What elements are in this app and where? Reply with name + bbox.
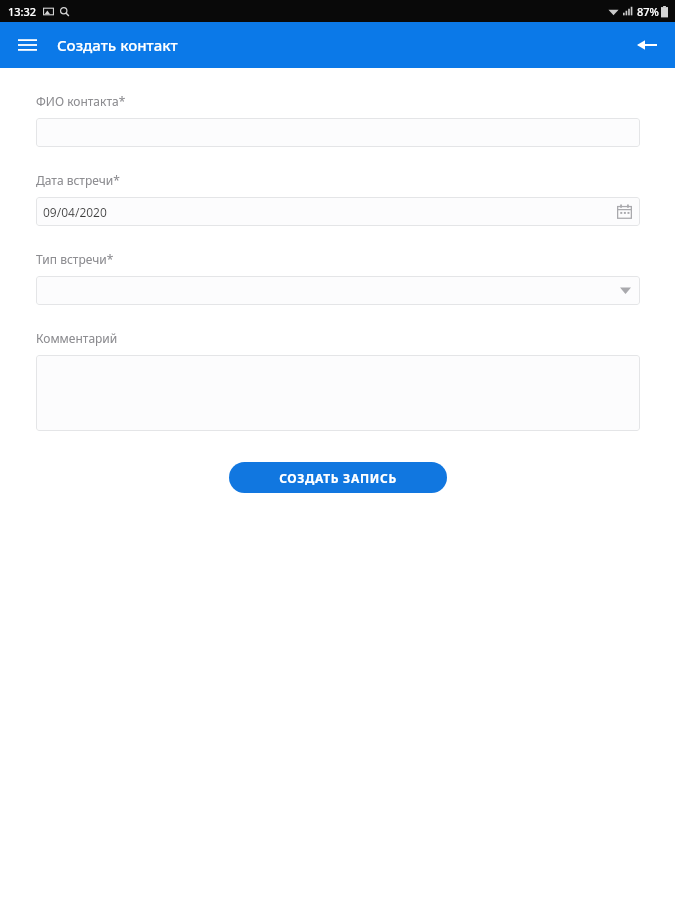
button[interactable]: Meeting type dropdown [36,276,640,305]
button[interactable]: 09/04/2020 [36,197,640,226]
staticText: 09/04/2020 [43,204,107,220]
staticText: ФИО контакта* [36,93,126,109]
button[interactable]: СОЗДАТЬ ЗАПИСЬ [229,462,447,493]
button[interactable]: Open navigation menu [7,25,47,65]
staticText: Дата встречи* [36,172,120,188]
staticText: СОЗДАТЬ ЗАПИСЬ [279,470,397,486]
staticText: Тип встречи* [36,251,114,267]
button[interactable]: Comment input [36,355,640,431]
button[interactable]: Contact full name input [36,118,640,147]
staticText: 87% [637,4,659,19]
staticText: Создать контакт [57,35,178,55]
staticText: Комментарий [36,330,118,346]
button[interactable]: Back [627,25,667,65]
staticText: 13:32 [8,4,37,19]
button[interactable]: Pick date [614,201,635,222]
